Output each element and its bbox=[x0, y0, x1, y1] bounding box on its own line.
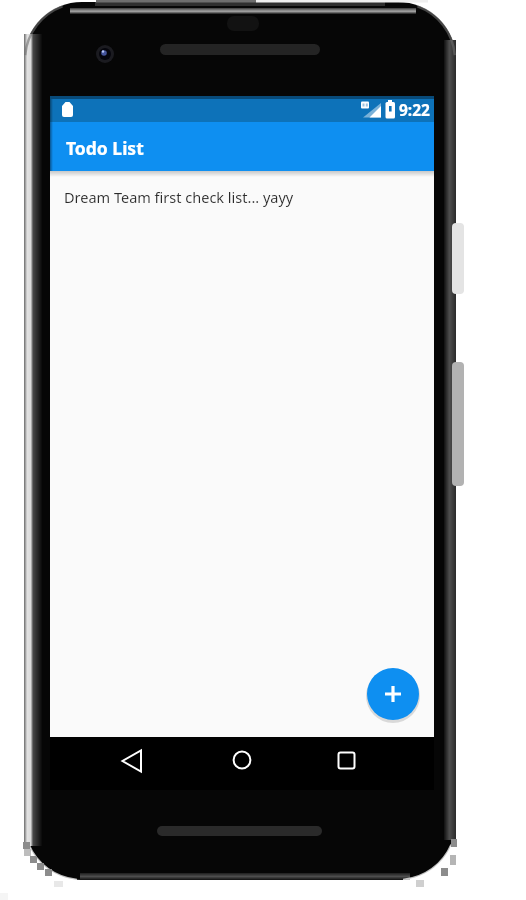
staticText: Dream Team first check list... yayy bbox=[64, 187, 294, 207]
button[interactable]: Dream Team first check list... yayy bbox=[50, 183, 434, 213]
button[interactable] bbox=[228, 746, 256, 774]
button[interactable] bbox=[367, 668, 419, 720]
button[interactable] bbox=[119, 746, 147, 774]
staticText: 9:22 bbox=[399, 99, 430, 120]
button[interactable] bbox=[333, 746, 361, 774]
staticText: Todo List bbox=[66, 136, 144, 160]
